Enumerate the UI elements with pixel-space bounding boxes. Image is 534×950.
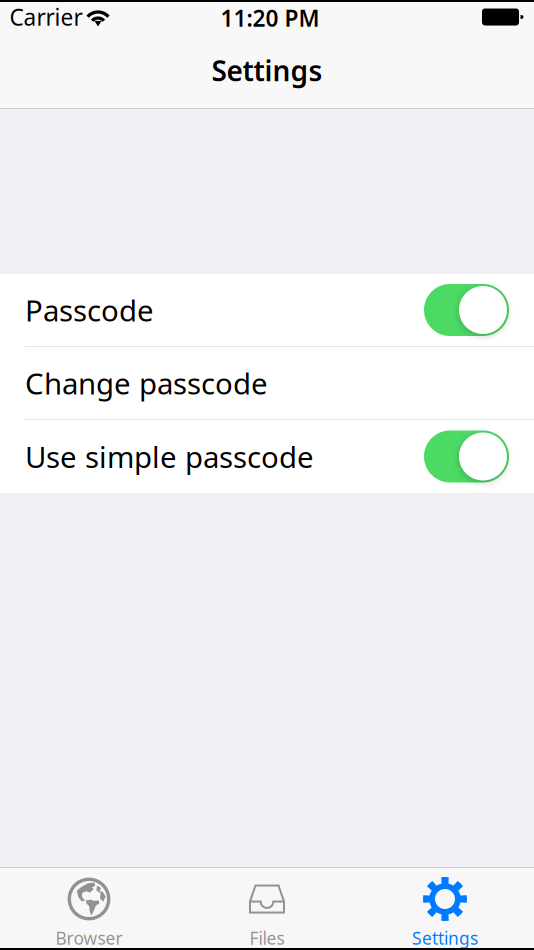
- button[interactable]: Change passcode: [0, 347, 534, 420]
- staticText: Browser: [55, 926, 122, 949]
- staticText: 11:20 PM: [220, 3, 319, 33]
- staticText: Passcode: [25, 290, 154, 329]
- staticText: Settings: [412, 926, 478, 949]
- staticText: Files: [249, 926, 284, 949]
- staticText: Carrier: [9, 2, 82, 32]
- button[interactable]: Use simple passcode: [0, 420, 534, 493]
- button[interactable]: Passcode: [0, 274, 534, 347]
- button[interactable]: Browser: [0, 868, 178, 950]
- button[interactable]: Settings: [356, 868, 534, 950]
- staticText: Change passcode: [25, 363, 268, 402]
- button[interactable]: Files: [178, 868, 356, 950]
- staticText: Settings: [211, 52, 322, 89]
- staticText: Use simple passcode: [25, 437, 314, 476]
